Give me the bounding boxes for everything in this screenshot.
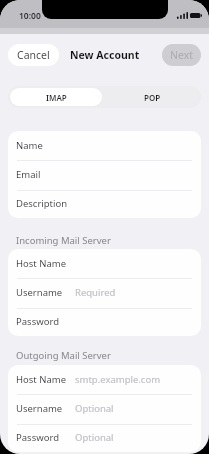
staticText: Username xyxy=(16,286,63,299)
staticText: Host Name xyxy=(16,257,67,270)
button[interactable]: Password xyxy=(8,307,201,336)
staticText: Optional xyxy=(75,402,114,415)
button[interactable]: Name xyxy=(8,131,201,160)
staticText: Description xyxy=(16,197,68,210)
staticText: Name xyxy=(16,139,43,152)
staticText: Email xyxy=(16,168,41,181)
staticText: Password xyxy=(16,315,59,328)
staticText: Optional xyxy=(75,431,114,444)
button[interactable]: Password xyxy=(8,423,201,452)
button[interactable]: Cancel xyxy=(8,44,59,66)
button[interactable]: Email xyxy=(8,160,201,189)
staticText: Cancel xyxy=(17,48,50,62)
staticText: POP xyxy=(144,92,161,103)
button[interactable]: Host Name xyxy=(8,249,201,278)
staticText: 10:00 xyxy=(19,10,41,22)
staticText: Outgoing Mail Server xyxy=(16,349,111,362)
staticText: IMAP xyxy=(46,92,67,103)
staticText: New Account xyxy=(70,48,140,62)
button[interactable]: Description xyxy=(8,189,201,218)
staticText: smtp.example.com xyxy=(75,373,161,386)
button[interactable]: Username xyxy=(8,394,201,423)
staticText: Username xyxy=(16,402,63,415)
staticText: Required xyxy=(75,286,116,299)
button[interactable]: Next xyxy=(162,44,201,66)
staticText: Host Name xyxy=(16,373,67,386)
button[interactable]: IMAP xyxy=(10,88,102,106)
button[interactable]: Username xyxy=(8,278,201,307)
staticText: Next xyxy=(170,48,194,62)
button[interactable]: Host Name xyxy=(8,365,201,394)
staticText: Incoming Mail Server xyxy=(16,234,111,247)
staticText: Password xyxy=(16,431,59,444)
button[interactable]: POP xyxy=(104,86,201,108)
